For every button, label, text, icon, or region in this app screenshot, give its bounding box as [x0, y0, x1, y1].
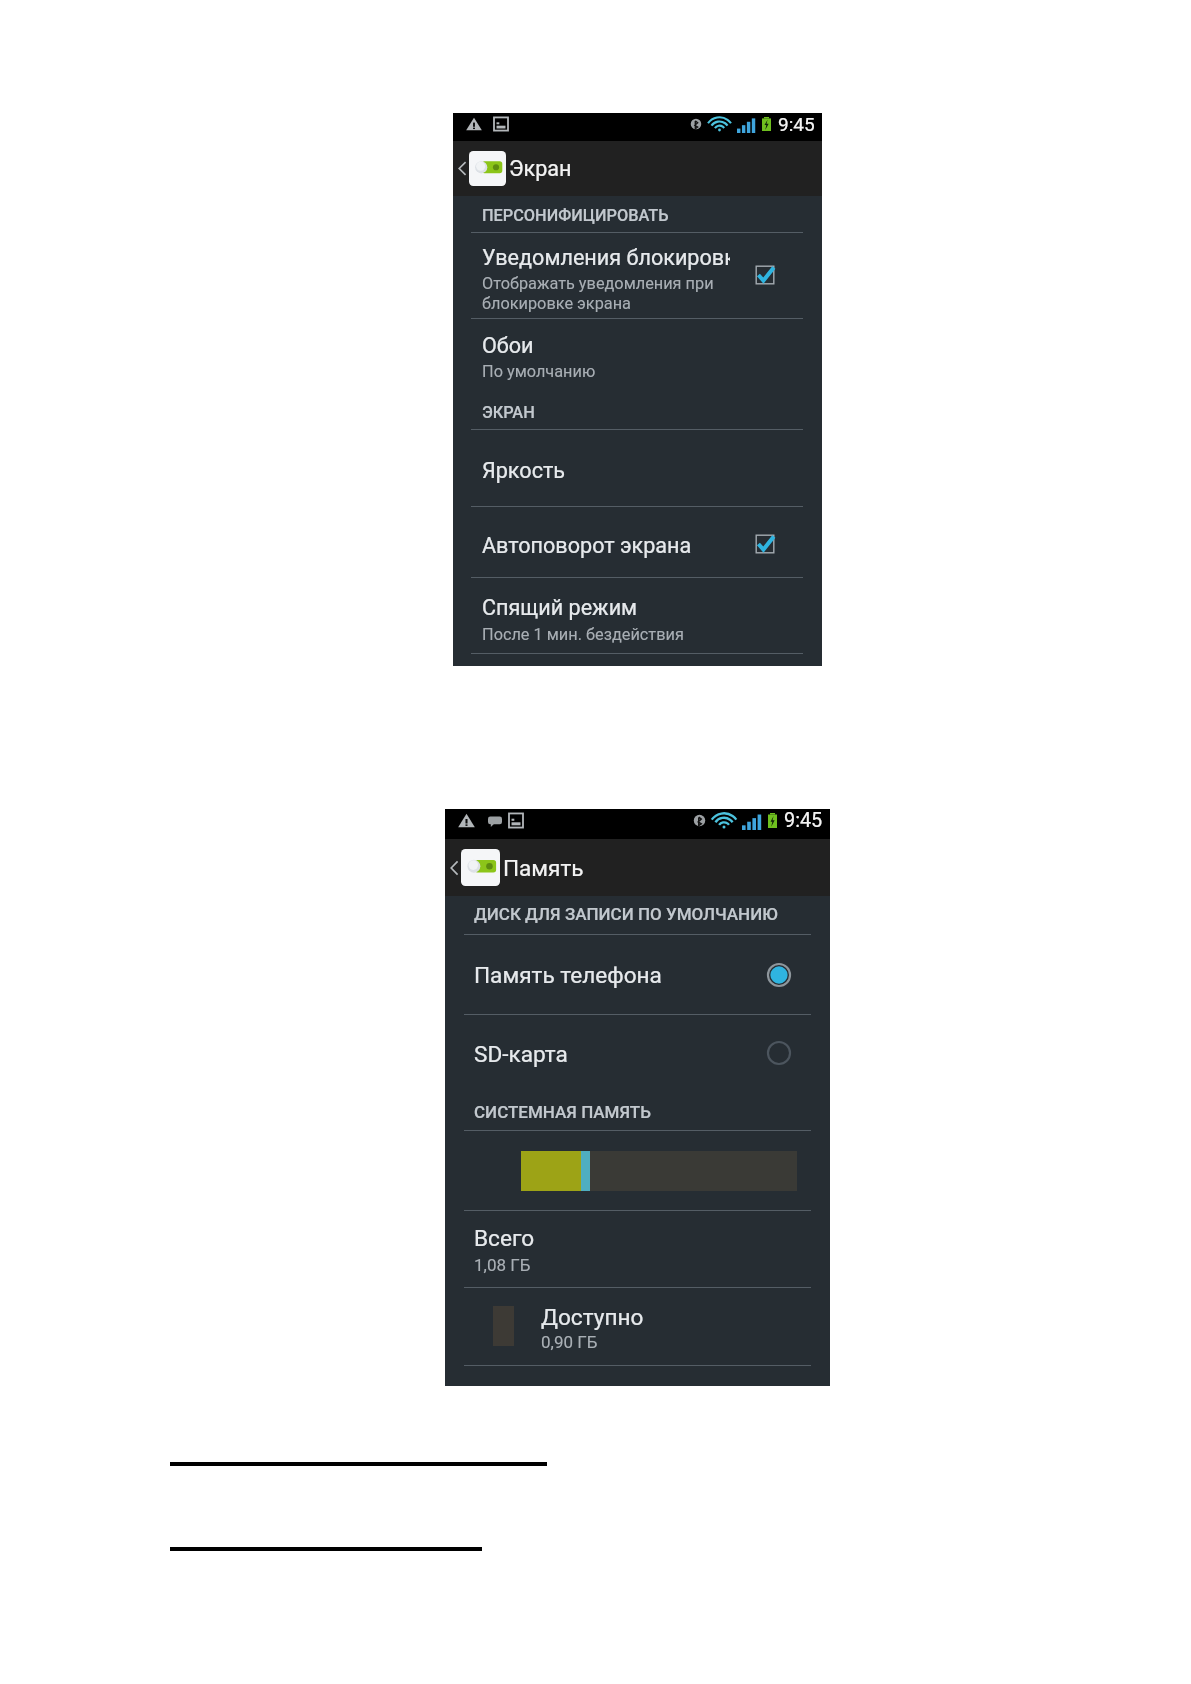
staticText: ДИСК ДЛЯ ЗАПИСИ ПО УМОЛЧАНИЮ: [474, 904, 778, 924]
staticText: Обои: [482, 333, 534, 358]
button[interactable]: Обои: [453, 318, 822, 402]
button[interactable]: Navigate up: [445, 839, 830, 896]
staticText: После 1 мин. бездействия: [482, 625, 684, 644]
staticText: Спящий режим: [482, 595, 638, 620]
staticText: Доступно: [541, 1304, 644, 1330]
staticText: Яркость: [482, 458, 566, 483]
button[interactable]: Яркость: [453, 429, 822, 506]
staticText: Память: [503, 855, 584, 881]
staticText: ЭКРАН: [482, 403, 535, 422]
staticText: СИСТЕМНАЯ ПАМЯТЬ: [474, 1102, 651, 1122]
button[interactable]: Checked: [755, 534, 775, 554]
button[interactable]: Уведомления блокировки: [453, 232, 822, 318]
button[interactable]: Selected: [767, 963, 791, 987]
staticText: Память телефона: [474, 962, 662, 988]
button[interactable]: Память телефона: [445, 934, 830, 1014]
staticText: Всего: [474, 1225, 535, 1251]
staticText: 1,08 ГБ: [474, 1255, 531, 1275]
button[interactable]: Всего: [445, 1210, 830, 1287]
button[interactable]: Not selected: [767, 1041, 791, 1065]
staticText: SD-карта: [474, 1041, 568, 1067]
staticText: 9:45: [778, 113, 815, 135]
button[interactable]: Автоповорот экрана: [453, 506, 822, 577]
staticText: Отображать уведомления при блокировке эк…: [482, 274, 714, 313]
staticText: По умолчанию: [482, 362, 596, 381]
staticText: Уведомления блокировки: [482, 245, 730, 270]
button[interactable]: SD-карта: [445, 1014, 830, 1094]
button[interactable]: Спящий режим: [453, 577, 822, 653]
staticText: Экран: [509, 156, 572, 181]
staticText: Автоповорот экрана: [482, 533, 692, 558]
button[interactable]: Checked: [755, 265, 775, 285]
staticText: 0,90 ГБ: [541, 1332, 598, 1352]
button[interactable]: Navigate up: [453, 141, 822, 196]
staticText: ПЕРСОНИФИЦИРОВАТЬ: [482, 206, 669, 225]
staticText: 9:45: [784, 809, 823, 832]
button[interactable]: Доступно: [445, 1287, 830, 1365]
